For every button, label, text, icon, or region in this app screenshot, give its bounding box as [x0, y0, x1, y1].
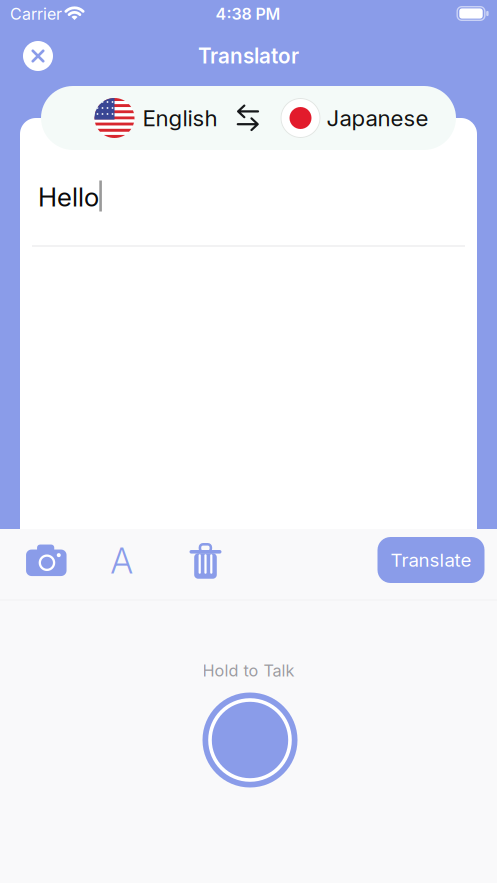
staticText: Translate: [390, 549, 471, 571]
button[interactable]: Close: [23, 41, 53, 71]
button[interactable]: Delete text: [189, 543, 221, 579]
staticText: English: [142, 104, 217, 131]
button[interactable]: Hold to Talk: [202, 692, 297, 787]
button[interactable]: English: [94, 98, 217, 138]
staticText: Japanese: [326, 104, 428, 131]
button[interactable]: Japanese: [280, 98, 428, 138]
button[interactable]: Swap languages: [237, 105, 259, 131]
staticText: Translator: [198, 43, 299, 68]
staticText: Hold to Talk: [202, 661, 294, 680]
staticText: 4:38 PM: [215, 4, 280, 24]
staticText: Hello: [38, 181, 99, 213]
button[interactable]: Camera: [26, 544, 66, 576]
button[interactable]: Text size: [110, 540, 132, 582]
staticText: A: [110, 540, 132, 582]
staticText: Carrier: [10, 4, 62, 24]
button[interactable]: Translate: [377, 537, 484, 583]
